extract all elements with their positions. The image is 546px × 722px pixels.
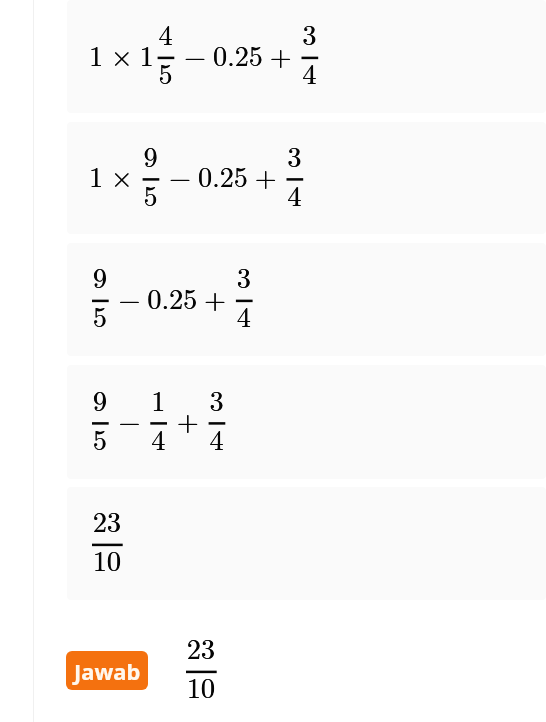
button[interactable]	[67, 0, 546, 113]
button[interactable]	[67, 243, 546, 356]
button[interactable]	[67, 122, 546, 234]
button[interactable]	[67, 365, 546, 479]
staticText: Jawab	[74, 656, 141, 686]
button[interactable]: Jawab	[66, 651, 148, 690]
button[interactable]	[67, 487, 546, 600]
